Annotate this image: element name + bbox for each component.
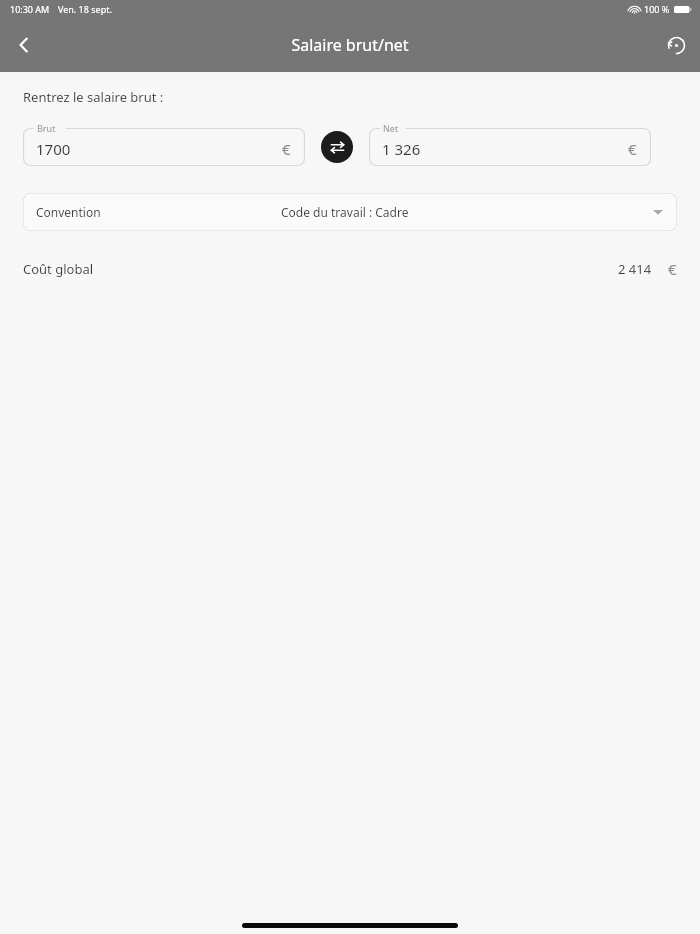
staticText: Rentrez le salaire brut : <box>23 88 164 106</box>
staticText: Convention <box>36 204 101 220</box>
staticText: Ven. 18 sept. <box>58 3 112 15</box>
staticText: € <box>668 259 677 279</box>
staticText: 100 % <box>644 3 670 15</box>
staticText: Brut <box>37 122 56 134</box>
staticText: Salaire brut/net <box>291 34 409 56</box>
button[interactable]: Convention <box>23 193 677 231</box>
staticText: 1 326 <box>382 139 421 159</box>
staticText: Coût global <box>23 260 94 278</box>
staticText: 10:30 AM <box>10 3 50 15</box>
button[interactable]: Brut <box>23 128 305 166</box>
staticText: € <box>282 139 291 159</box>
staticText: € <box>628 139 637 159</box>
staticText: Code du travail : Cadre <box>281 204 409 220</box>
button[interactable]: History <box>652 21 700 69</box>
staticText: 1700 <box>36 139 71 159</box>
button[interactable]: Back <box>0 21 48 69</box>
staticText: 2 414 <box>618 260 652 278</box>
button[interactable]: Net <box>369 128 651 166</box>
button[interactable]: Swap brut and net <box>321 131 353 163</box>
staticText: Net <box>383 122 399 134</box>
